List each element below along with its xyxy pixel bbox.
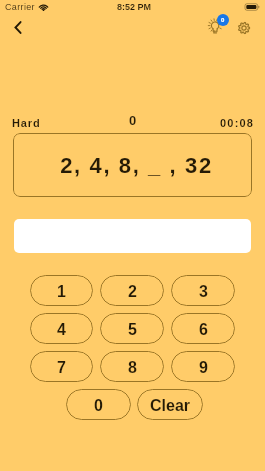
button[interactable]: 8 (100, 351, 164, 382)
staticText: 8 (128, 359, 137, 377)
button[interactable]: Back (5, 15, 30, 40)
button[interactable]: Clear (137, 389, 203, 420)
staticText: 0 (221, 17, 225, 24)
staticText: 8:52 PM (117, 2, 152, 12)
staticText: 9 (199, 359, 208, 377)
staticText: 6 (199, 321, 208, 339)
button[interactable]: 7 (30, 351, 93, 382)
staticText: 0 (129, 113, 137, 128)
button[interactable] (14, 219, 251, 253)
staticText: 4 (57, 321, 66, 339)
button[interactable]: 4 (30, 313, 93, 344)
staticText: 2, 4, 8, _ , 32 (60, 153, 213, 178)
button[interactable]: Hint (203, 15, 229, 41)
staticText: Carrier (5, 2, 35, 12)
staticText: 3 (199, 283, 208, 301)
staticText: 1 (57, 283, 66, 301)
staticText: 7 (57, 359, 66, 377)
staticText: 2 (128, 283, 137, 301)
staticText: 00:08 (220, 117, 255, 129)
button[interactable]: 3 (171, 275, 235, 306)
button[interactable]: 1 (30, 275, 93, 306)
button[interactable]: 6 (171, 313, 235, 344)
button[interactable]: 2 (100, 275, 164, 306)
button[interactable]: Settings (231, 15, 256, 40)
button[interactable]: 9 (171, 351, 235, 382)
button[interactable]: 5 (100, 313, 164, 344)
staticText: Hard (12, 117, 41, 129)
staticText: Clear (150, 397, 191, 415)
button[interactable]: 0 (66, 389, 131, 420)
staticText: 5 (128, 321, 137, 339)
staticText: 0 (94, 397, 103, 415)
